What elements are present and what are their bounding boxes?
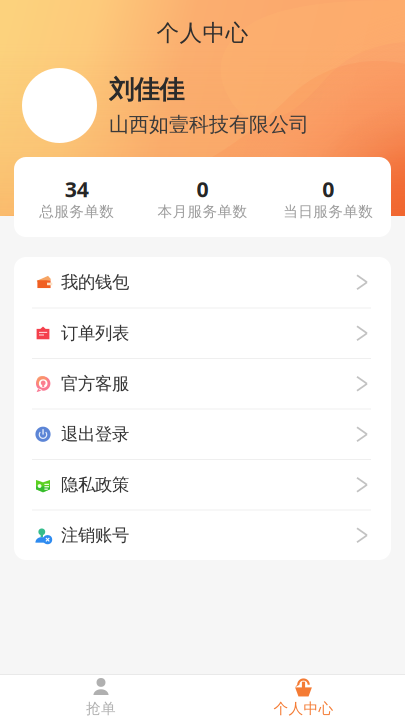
button[interactable]: 隐私政策 xyxy=(14,459,391,509)
staticText: 注销账号 xyxy=(61,525,129,546)
button[interactable]: 官方客服 xyxy=(14,358,391,408)
staticText: 当日服务单数 xyxy=(283,202,373,220)
staticText: 隐私政策 xyxy=(61,474,129,495)
staticText: 刘佳佳 xyxy=(109,74,184,105)
button[interactable]: 我的钱包 xyxy=(14,257,391,307)
button[interactable]: 注销账号 xyxy=(14,509,391,560)
button[interactable]: 抢单 xyxy=(0,675,202,720)
staticText: 订单列表 xyxy=(61,323,129,344)
staticText: 总服务单数 xyxy=(39,202,114,220)
button[interactable]: 个人中心 xyxy=(202,675,405,720)
staticText: 本月服务单数 xyxy=(157,202,247,220)
staticText: 个人中心 xyxy=(156,19,248,47)
button[interactable]: 退出登录 xyxy=(14,408,391,459)
staticText: 个人中心 xyxy=(273,699,333,717)
staticText: 山西如壹科技有限公司 xyxy=(109,112,309,137)
button[interactable]: 订单列表 xyxy=(14,307,391,358)
staticText: 34 xyxy=(65,175,89,203)
staticText: 0 xyxy=(322,175,334,203)
staticText: 退出登录 xyxy=(61,424,129,445)
staticText: 我的钱包 xyxy=(61,272,129,293)
staticText: 抢单 xyxy=(86,699,116,717)
staticText: 官方客服 xyxy=(61,373,129,394)
staticText: 0 xyxy=(196,175,208,203)
